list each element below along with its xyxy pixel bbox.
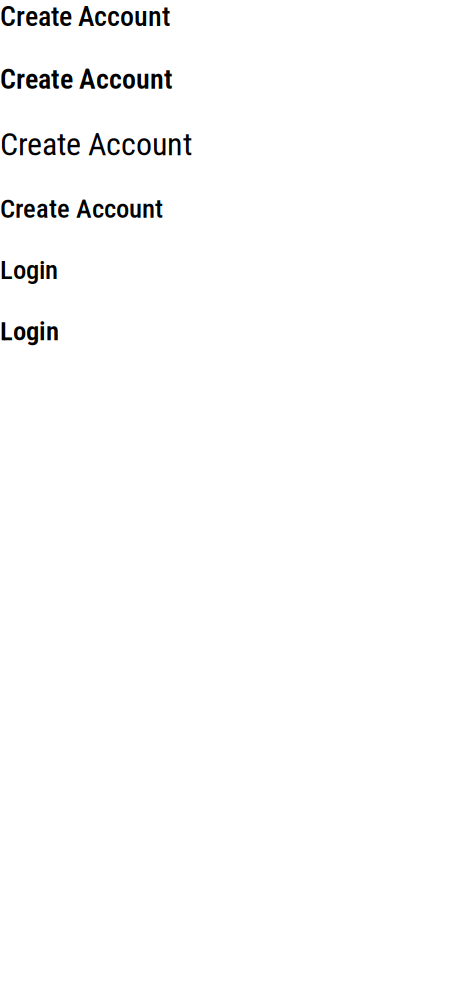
staticText: Login (0, 254, 58, 286)
staticText: Create Account (0, 63, 173, 96)
staticText: Create Account (0, 126, 192, 163)
staticText: Login (0, 316, 59, 347)
staticText: Create Account (0, 0, 170, 33)
staticText: Create Account (0, 193, 163, 224)
